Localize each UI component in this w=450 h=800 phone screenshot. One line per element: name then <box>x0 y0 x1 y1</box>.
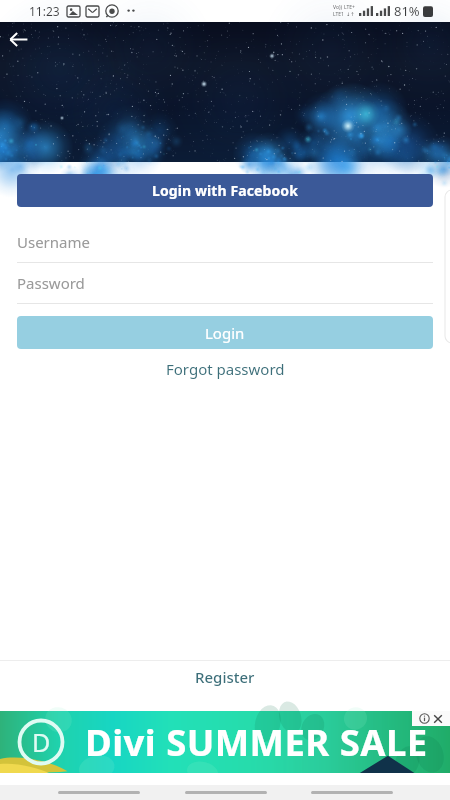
button[interactable]: Ad options <box>412 711 450 726</box>
staticText: Password <box>17 273 85 293</box>
staticText: Vo)) <box>333 4 342 11</box>
button[interactable]: Forgot password <box>0 356 450 382</box>
button[interactable]: Recents <box>58 791 140 794</box>
button[interactable]: Register <box>0 661 450 711</box>
staticText: D <box>32 725 51 759</box>
staticText: Register <box>195 667 255 687</box>
button[interactable]: Login <box>17 316 433 349</box>
staticText: Forgot password <box>166 359 285 379</box>
staticText: Divi SUMMER SALE <box>85 717 428 767</box>
staticText: LTE1 <box>333 11 344 18</box>
button[interactable]: D <box>0 711 450 773</box>
staticText: 81% <box>394 2 420 20</box>
button[interactable]: Home <box>185 791 267 794</box>
button[interactable]: Back <box>2 23 34 55</box>
button[interactable]: Back <box>311 791 393 794</box>
button[interactable]: Login with Facebook <box>17 174 433 207</box>
staticText: Login with Facebook <box>152 181 298 200</box>
staticText: 11:23 <box>29 3 60 19</box>
staticText: Username <box>17 232 90 252</box>
staticText: ↓↑ <box>346 11 355 17</box>
staticText: LTE+ <box>344 4 355 11</box>
staticText: Login <box>205 323 245 343</box>
